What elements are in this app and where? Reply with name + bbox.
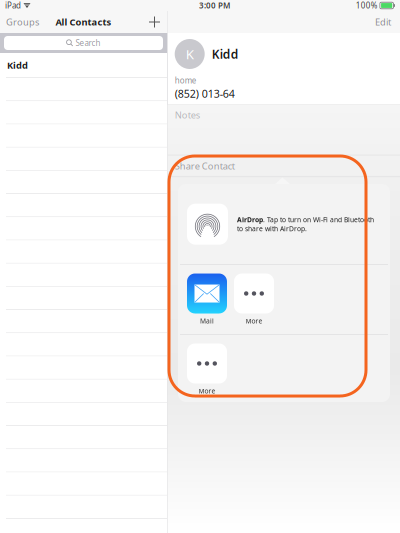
staticText: More <box>245 316 262 325</box>
button[interactable]: Edit <box>366 10 400 34</box>
staticText: Mail <box>200 316 214 325</box>
staticText: Kidd <box>212 46 239 62</box>
staticText: Edit <box>375 16 391 28</box>
staticText: (852) 013-64 <box>175 87 235 101</box>
staticText: All Contacts <box>55 16 111 28</box>
button[interactable]: AirDrop. Tap to turn on Wi-Fi and Blueto… <box>178 184 390 264</box>
staticText: iPad <box>5 0 21 11</box>
staticText: 100% <box>356 0 378 11</box>
staticText: AirDrop. Tap to turn on Wi-Fi and Blueto… <box>237 215 374 233</box>
staticText: Search <box>75 38 100 48</box>
staticText: Notes <box>175 109 200 121</box>
staticText: home <box>175 75 197 86</box>
staticText: 3:00 PM <box>199 0 230 11</box>
button[interactable]: Kidd <box>0 53 167 77</box>
button[interactable]: Mail <box>187 273 227 327</box>
button[interactable]: More <box>187 343 227 397</box>
staticText: More <box>198 386 215 395</box>
button[interactable]: Groups <box>0 10 45 34</box>
staticText: Groups <box>6 16 39 28</box>
button[interactable]: Add Contact <box>142 11 167 32</box>
staticText: K <box>186 45 194 63</box>
button[interactable]: More <box>234 273 274 327</box>
staticText: Share Contact <box>175 160 235 172</box>
staticText: Kidd <box>7 59 28 71</box>
